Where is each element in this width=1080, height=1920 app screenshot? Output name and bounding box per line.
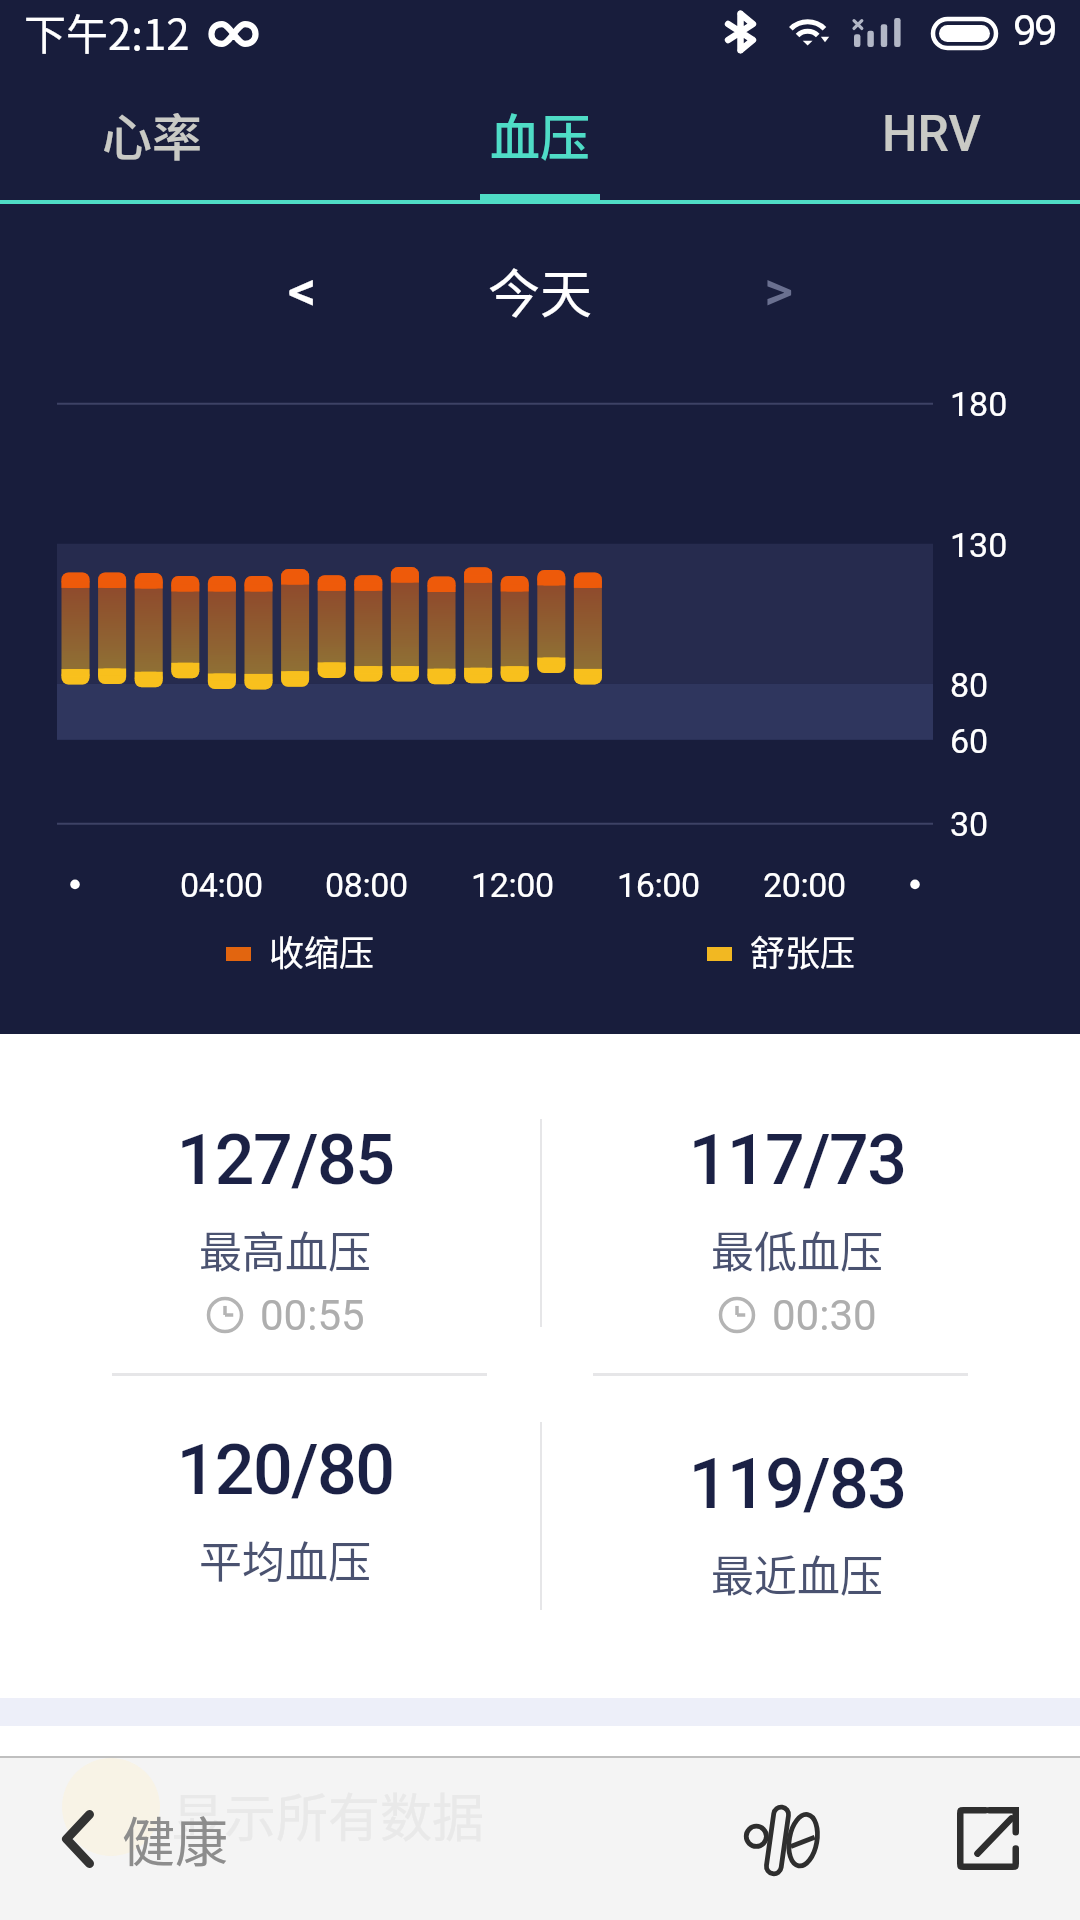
staticText: 下午2:12 — [24, 1, 190, 62]
staticText: 20:00 — [763, 865, 846, 905]
staticText: 平均血压 — [199, 1528, 371, 1588]
button[interactable]: 119/83 — [557, 1436, 1037, 1532]
staticText: 08:00 — [325, 865, 408, 905]
staticText: 今天 — [488, 253, 593, 328]
staticText: 最高血压 — [199, 1218, 371, 1278]
staticText: 舒张压 — [750, 925, 856, 976]
button[interactable]: 心率 — [0, 68, 332, 200]
staticText: 30 — [950, 804, 989, 844]
staticText: 04:00 — [180, 865, 263, 905]
staticText: 80 — [950, 665, 989, 705]
staticText: 12:00 — [471, 865, 554, 905]
staticText: 最低血压 — [711, 1218, 883, 1278]
staticText: 16:00 — [617, 865, 700, 905]
button[interactable]: 舒张压 — [707, 925, 856, 976]
button[interactable]: 117/73 — [557, 1112, 1037, 1208]
staticText: < — [288, 258, 317, 324]
staticText: 60 — [950, 721, 989, 761]
staticText: 119/83 — [688, 1443, 906, 1525]
staticText: 117/73 — [688, 1119, 906, 1201]
staticText: 最近血压 — [711, 1542, 883, 1602]
staticText: 收缩压 — [269, 925, 375, 976]
other: Back — [62, 1810, 94, 1868]
staticText: 血压 — [490, 98, 590, 170]
button[interactable]: HRV — [751, 68, 1080, 200]
staticText: HRV — [882, 105, 981, 164]
staticText: 心率 — [102, 98, 202, 170]
staticText: 127/85 — [176, 1119, 394, 1201]
staticText: 180 — [950, 384, 1008, 424]
button[interactable]: Health data — [745, 1800, 822, 1880]
staticText: 显示所有数据 — [172, 1777, 485, 1852]
staticText: > — [764, 258, 794, 324]
staticText: 120/80 — [176, 1429, 394, 1511]
staticText: 99 — [1013, 6, 1056, 55]
button[interactable]: Previous day — [245, 243, 359, 339]
staticText: 00:30 — [772, 1291, 877, 1340]
button[interactable]: 120/80 — [45, 1422, 525, 1518]
button[interactable]: 血压 — [360, 68, 720, 200]
button[interactable]: 127/85 — [45, 1112, 525, 1208]
button[interactable]: Back — [62, 1796, 228, 1882]
staticText: 00:55 — [260, 1291, 365, 1340]
button[interactable]: 收缩压 — [226, 925, 375, 976]
button[interactable]: Open in new window — [957, 1807, 1019, 1870]
button[interactable]: Next day — [722, 243, 836, 339]
staticText: 健康 — [122, 1801, 228, 1878]
staticText: 130 — [950, 525, 1008, 565]
